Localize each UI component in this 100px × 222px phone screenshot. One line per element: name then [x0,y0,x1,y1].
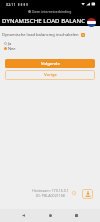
button[interactable]: Nee [4,46,100,51]
button[interactable]: Info [81,33,85,37]
staticText: Geen internetverbinding [32,9,72,14]
staticText: Vorige [44,72,57,78]
button[interactable]: Recents [71,209,81,222]
button[interactable]: Ja [4,41,100,46]
button[interactable]: Vorige [5,70,95,80]
staticText: 02:11 [6,2,16,7]
staticText: Ja [8,41,12,46]
staticText: DYNAMISCHE LOAD BALANC [2,17,86,25]
button[interactable]: Volgende [5,59,95,68]
button[interactable]: Taal [87,18,96,27]
button[interactable]: Back [18,209,28,222]
staticText: Dynamische load balancing inschakelen [2,32,79,38]
staticText: Nee [8,46,16,51]
staticText: Hostnaam: 170.16.0.1 [32,188,69,193]
button[interactable]: Download [82,189,93,199]
button[interactable]: Help [71,190,77,196]
button[interactable]: Home [45,209,55,222]
staticText: Volgende [41,61,60,67]
staticText: ID: PBLA0021168 [36,193,65,198]
